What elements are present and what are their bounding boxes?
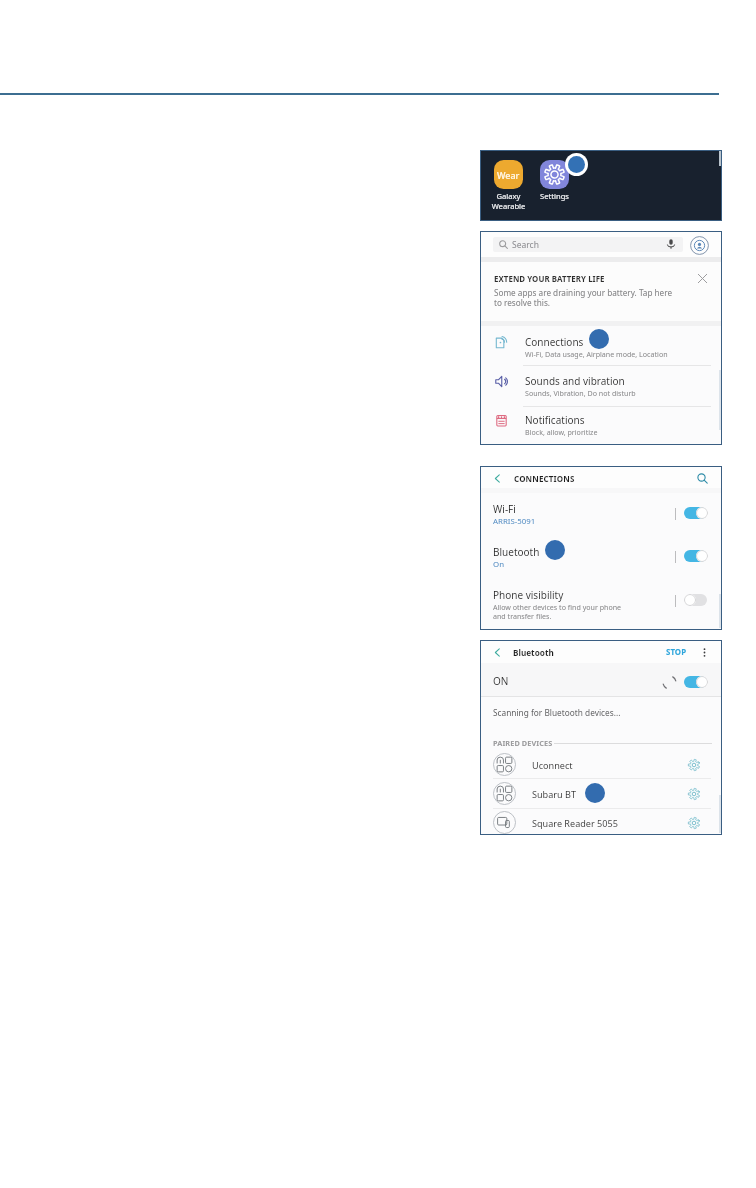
staticText: ARRIS-5091 — [493, 516, 536, 527]
button[interactable] — [480, 331, 722, 369]
staticText: CONNECTIONS — [514, 473, 575, 484]
button[interactable]: Settings — [526, 158, 581, 213]
button[interactable]: Device settings — [688, 759, 700, 771]
button[interactable]: More options — [700, 648, 709, 657]
button[interactable]: Device settings — [688, 817, 700, 829]
staticText: PAIRED DEVICES — [493, 738, 553, 748]
button[interactable] — [480, 779, 722, 808]
staticText: Square Reader 5055 — [532, 817, 618, 829]
staticText: Galaxy Wearable — [481, 191, 536, 212]
button[interactable]: Device settings — [688, 788, 700, 800]
button[interactable]: Turn on — [684, 594, 707, 606]
staticText: On — [493, 559, 504, 570]
button[interactable] — [480, 370, 722, 408]
staticText: Bluetooth — [493, 545, 540, 559]
button[interactable] — [480, 666, 722, 697]
button[interactable]: Back — [493, 648, 502, 657]
staticText: Phone visibility — [493, 588, 564, 602]
staticText: Wear — [497, 169, 520, 181]
button[interactable] — [480, 262, 722, 321]
staticText: Sounds, Vibration, Do not disturb — [525, 388, 636, 398]
button[interactable]: Voice search — [666, 239, 676, 249]
button[interactable]: Search — [493, 237, 683, 252]
staticText: Notifications — [525, 413, 585, 427]
button[interactable]: Dismiss — [698, 274, 707, 283]
staticText: Allow other devices to find your phone a… — [493, 602, 622, 621]
staticText: Settings — [527, 191, 582, 201]
staticText: EXTEND YOUR BATTERY LIFE — [494, 274, 605, 285]
button[interactable] — [480, 808, 722, 837]
button[interactable]: Search — [697, 473, 708, 484]
button[interactable] — [480, 539, 722, 581]
staticText: Subaru BT — [532, 788, 577, 800]
button[interactable]: Back — [493, 474, 502, 483]
staticText: Block, allow, prioritize — [525, 427, 598, 437]
button[interactable] — [480, 410, 722, 448]
staticText: Some apps are draining your battery. Tap… — [494, 287, 673, 308]
staticText: Wi-Fi, Data usage, Airplane mode, Locati… — [525, 349, 668, 359]
button[interactable] — [480, 750, 722, 779]
staticText: Connections — [525, 335, 584, 349]
staticText: Search — [512, 239, 539, 251]
button[interactable]: Account — [690, 236, 709, 255]
button[interactable]: Turn off — [684, 550, 707, 562]
button[interactable]: Turn off — [684, 676, 707, 688]
button[interactable] — [480, 583, 722, 628]
staticText: Sounds and vibration — [525, 374, 625, 388]
staticText: Bluetooth — [513, 647, 554, 658]
button[interactable] — [480, 496, 722, 537]
staticText: Wi-Fi — [493, 502, 516, 516]
button[interactable]: Galaxy Wearable — [481, 158, 536, 213]
staticText: Uconnect — [532, 759, 573, 771]
staticText: Scanning for Bluetooth devices... — [493, 707, 621, 718]
staticText: STOP — [666, 647, 687, 658]
button[interactable]: STOP — [666, 647, 687, 658]
button[interactable]: Turn off — [684, 507, 707, 519]
staticText: ON — [493, 674, 509, 688]
